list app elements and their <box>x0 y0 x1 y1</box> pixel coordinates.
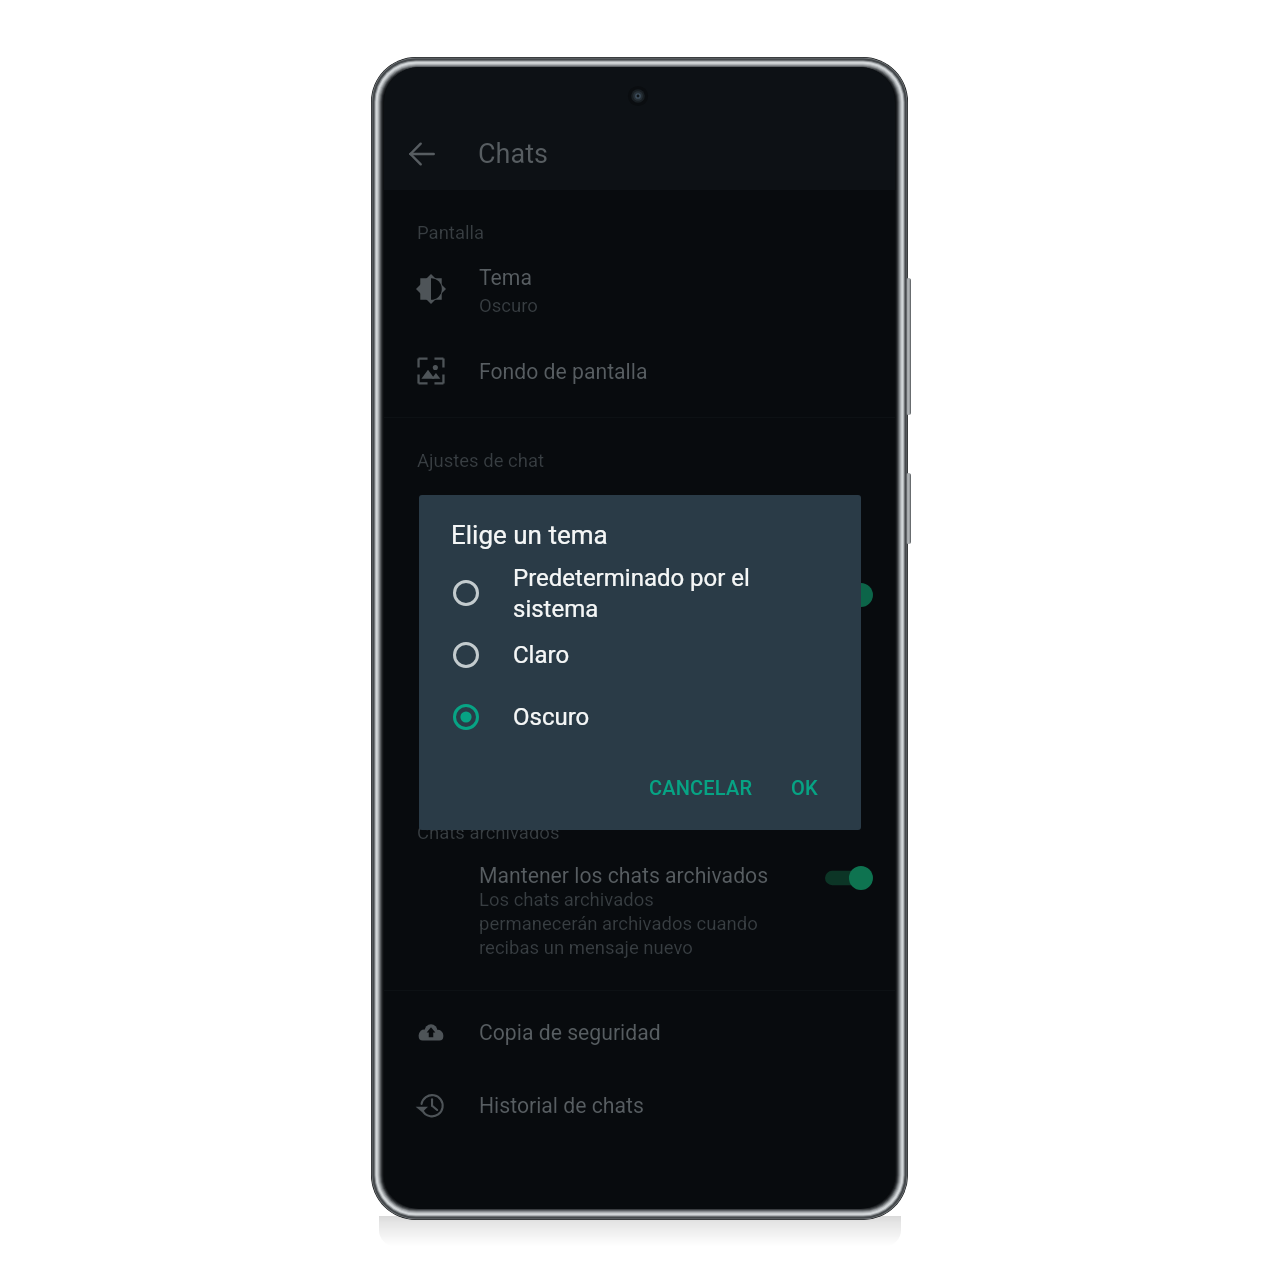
button[interactable]: Copia de seguridad <box>384 1000 895 1064</box>
button[interactable]: Claro <box>440 629 840 681</box>
staticText: permanecerán archivados cuando <box>479 913 758 935</box>
button[interactable]: Tema, Oscuro <box>384 254 895 326</box>
button[interactable]: Oscuro <box>440 691 840 743</box>
staticText: Tema <box>479 265 532 290</box>
staticText: Enter para enviar <box>479 510 638 535</box>
button[interactable]: Mantener los chats archivados <box>823 862 875 894</box>
staticText: Predeterminado por el <box>513 564 750 592</box>
staticText: Oscuro <box>479 295 538 317</box>
staticText: Copia de seguridad <box>479 1020 661 1045</box>
staticText: Fondo de pantalla <box>479 359 648 384</box>
button[interactable]: Fondo de pantalla <box>384 340 895 402</box>
button[interactable]: Historial de chats <box>384 1074 895 1138</box>
staticText: Ajustes de chat <box>417 450 545 472</box>
staticText: sistema <box>513 595 599 623</box>
button[interactable]: Mantener los chats archivados <box>384 850 895 970</box>
staticText: Mediano <box>479 698 551 720</box>
staticText: Los chats archivados <box>479 889 654 911</box>
staticText: Claro <box>513 641 570 669</box>
staticText: Mensajes multimedia <box>479 588 682 613</box>
button[interactable]: Predeterminado por el sistema <box>440 567 840 619</box>
staticText: Historial de chats <box>479 1093 644 1118</box>
button[interactable]: Back <box>396 128 448 180</box>
staticText: Chats <box>478 138 548 170</box>
staticText: Oscuro <box>513 703 590 731</box>
staticText: Pantalla <box>417 222 485 244</box>
staticText: Chats archivados <box>417 822 560 844</box>
button[interactable]: OK <box>777 765 832 809</box>
staticText: CANCELAR <box>649 776 753 799</box>
staticText: recibas un mensaje nuevo <box>479 937 693 959</box>
button[interactable]: Activar ajuste <box>823 579 875 611</box>
staticText: OK <box>791 776 818 799</box>
button[interactable]: CANCELAR <box>639 765 762 809</box>
staticText: Mantener los chats archivados <box>479 863 769 888</box>
staticText: Elige un tema <box>451 520 608 550</box>
